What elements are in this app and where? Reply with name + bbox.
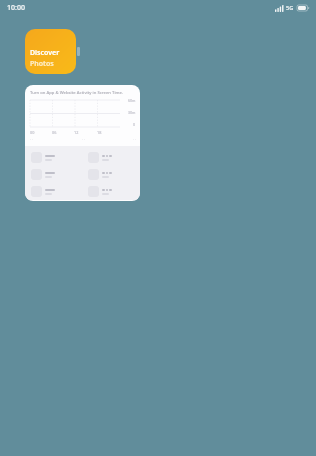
staticText: 12 (74, 130, 79, 135)
staticText: 5G (286, 4, 294, 12)
button[interactable] (88, 167, 134, 182)
button[interactable] (88, 150, 134, 165)
staticText: 06 (52, 130, 57, 135)
staticText: · · (82, 137, 85, 142)
button[interactable]: Discover (25, 29, 76, 74)
staticText: Photos (30, 59, 54, 69)
staticText: Discover (30, 48, 60, 58)
staticText: 0 (133, 122, 136, 127)
staticText: 00 (30, 130, 35, 135)
other: Cellular signal (275, 5, 284, 12)
staticText: 10:00 (7, 3, 25, 13)
staticText: 60m (128, 98, 136, 103)
staticText: 30m (128, 110, 136, 115)
other: Battery (297, 5, 309, 11)
staticText: · · (133, 137, 136, 142)
button[interactable]: Turn on App & Website Activity in Screen… (25, 85, 140, 201)
staticText: 18 (97, 130, 102, 135)
staticText: Turn on App & Website Activity in Screen… (30, 90, 124, 96)
button[interactable] (31, 184, 83, 199)
button[interactable] (31, 150, 83, 165)
button[interactable] (88, 184, 134, 199)
button[interactable] (31, 167, 83, 182)
staticText: · · (30, 137, 33, 142)
